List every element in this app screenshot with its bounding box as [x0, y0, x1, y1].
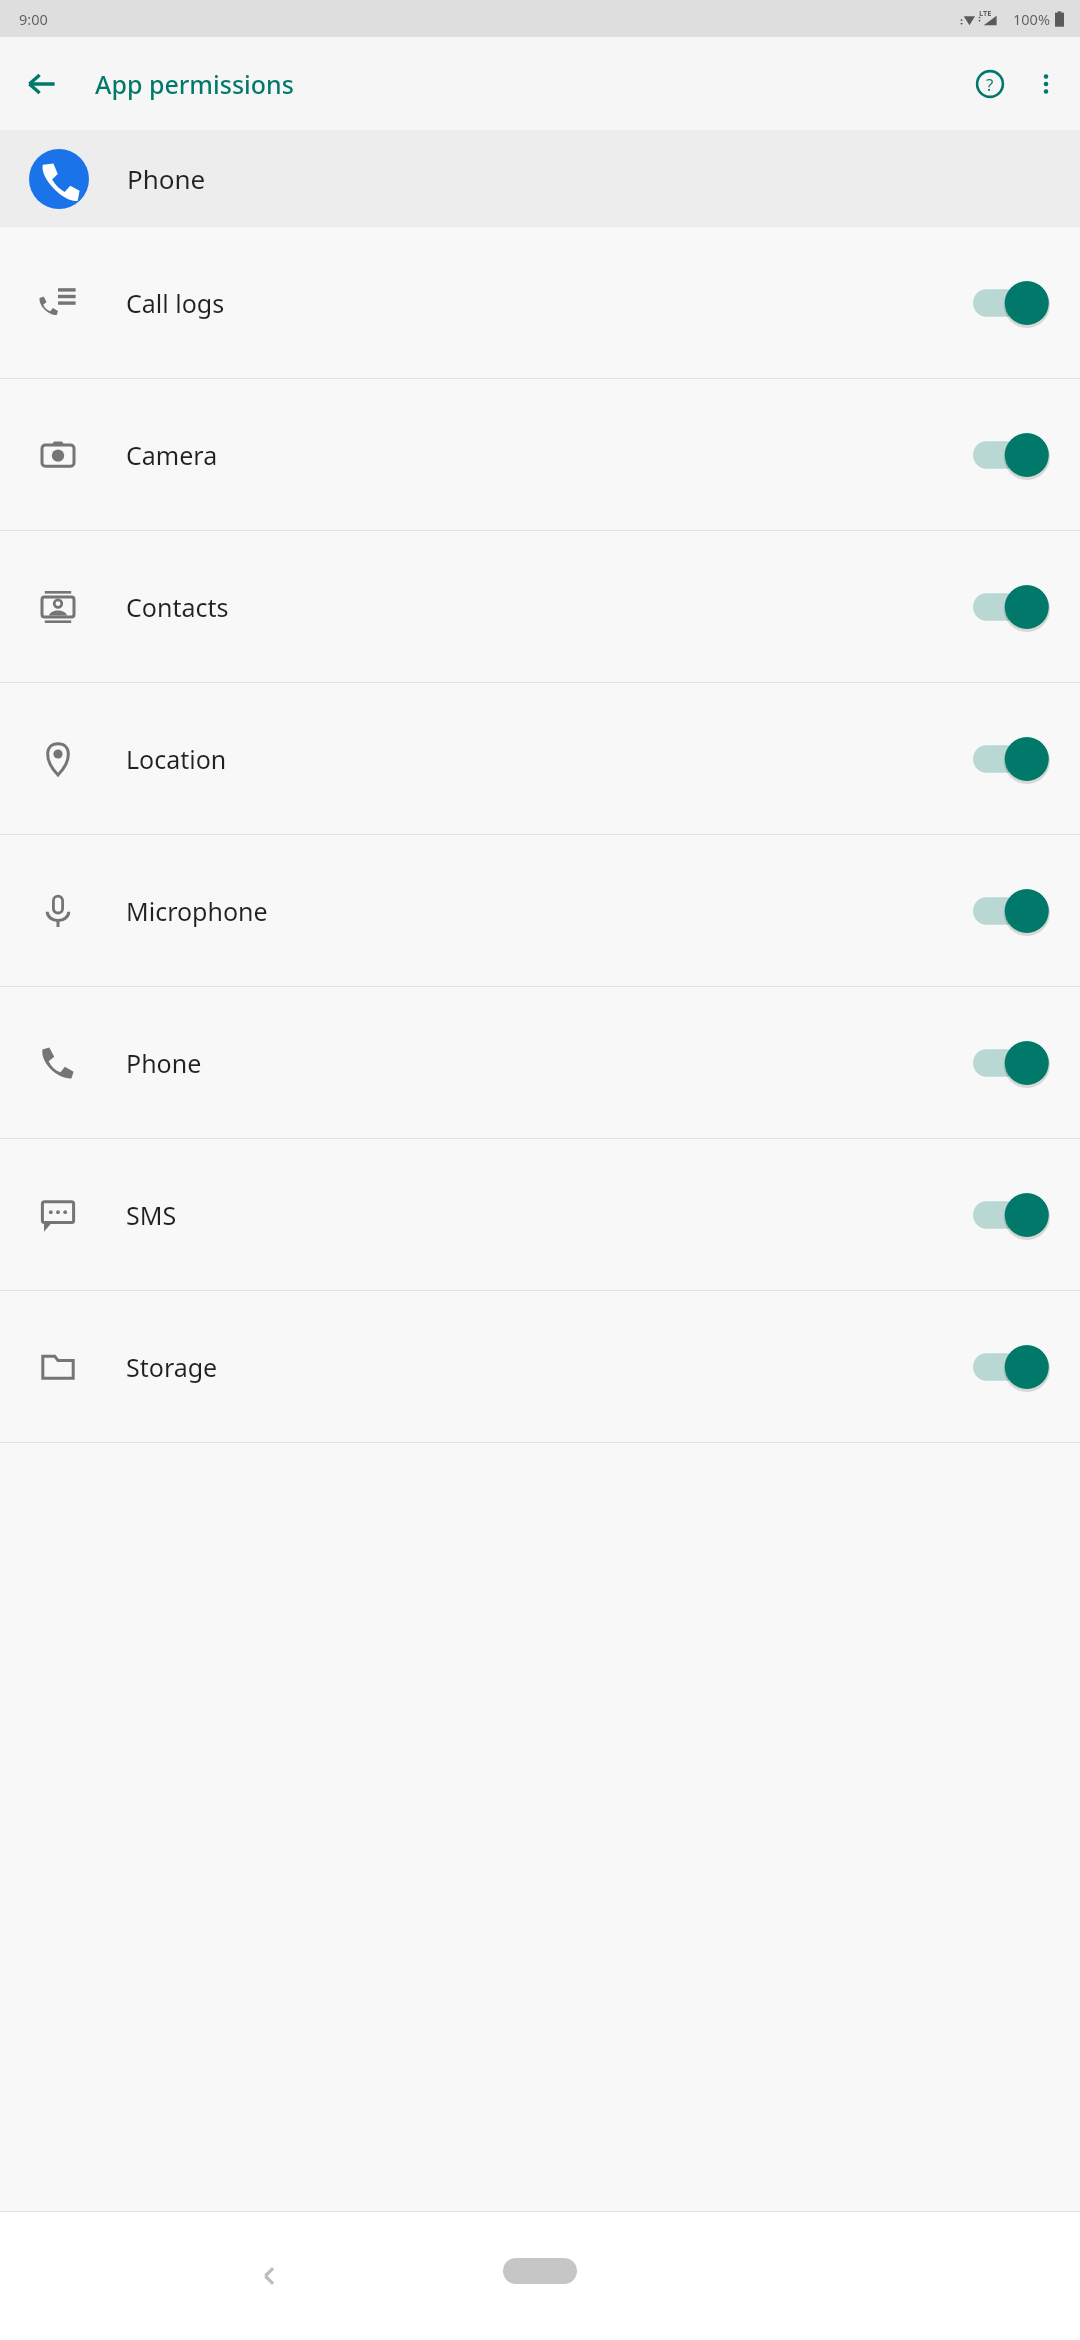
staticText: App permissions [95, 67, 294, 101]
staticText: Contacts [126, 590, 229, 624]
button[interactable]: Phone [0, 130, 1080, 227]
button[interactable]: Help [962, 56, 1018, 112]
staticText: Phone [127, 161, 206, 196]
staticText: Phone [126, 1046, 202, 1080]
button[interactable]: Location [0, 683, 1080, 834]
button[interactable]: Back [14, 56, 70, 112]
button[interactable]: SMS [0, 1139, 1080, 1290]
button[interactable]: Back [230, 2236, 310, 2316]
button[interactable]: Microphone permission toggle [958, 874, 1068, 948]
staticText: Storage [126, 1350, 218, 1384]
button[interactable]: Contacts [0, 531, 1080, 682]
button[interactable]: Microphone [0, 835, 1080, 986]
button[interactable]: Storage permission toggle [958, 1330, 1068, 1404]
staticText: SMS [126, 1198, 177, 1232]
button[interactable]: SMS permission toggle [958, 1178, 1068, 1252]
staticText: Location [126, 742, 227, 776]
button[interactable]: Phone [0, 987, 1080, 1138]
staticText: Microphone [126, 894, 268, 928]
button[interactable]: Location permission toggle [958, 722, 1068, 796]
button[interactable]: Camera permission toggle [958, 418, 1068, 492]
button[interactable]: Home [485, 2246, 595, 2296]
button[interactable]: Contacts permission toggle [958, 570, 1068, 644]
button[interactable]: Phone permission toggle [958, 1026, 1068, 1100]
button[interactable]: Call logs permission toggle [958, 266, 1068, 340]
button[interactable]: Storage [0, 1291, 1080, 1442]
staticText: ? [986, 73, 994, 96]
button[interactable]: Camera [0, 379, 1080, 530]
button[interactable]: More options [1018, 56, 1074, 112]
staticText: 9:00 [19, 9, 48, 29]
staticText: LTE [979, 8, 992, 18]
staticText: 100% [1013, 9, 1050, 29]
button[interactable]: Call logs [0, 227, 1080, 378]
staticText: Camera [126, 438, 218, 472]
staticText: Call logs [126, 286, 225, 320]
